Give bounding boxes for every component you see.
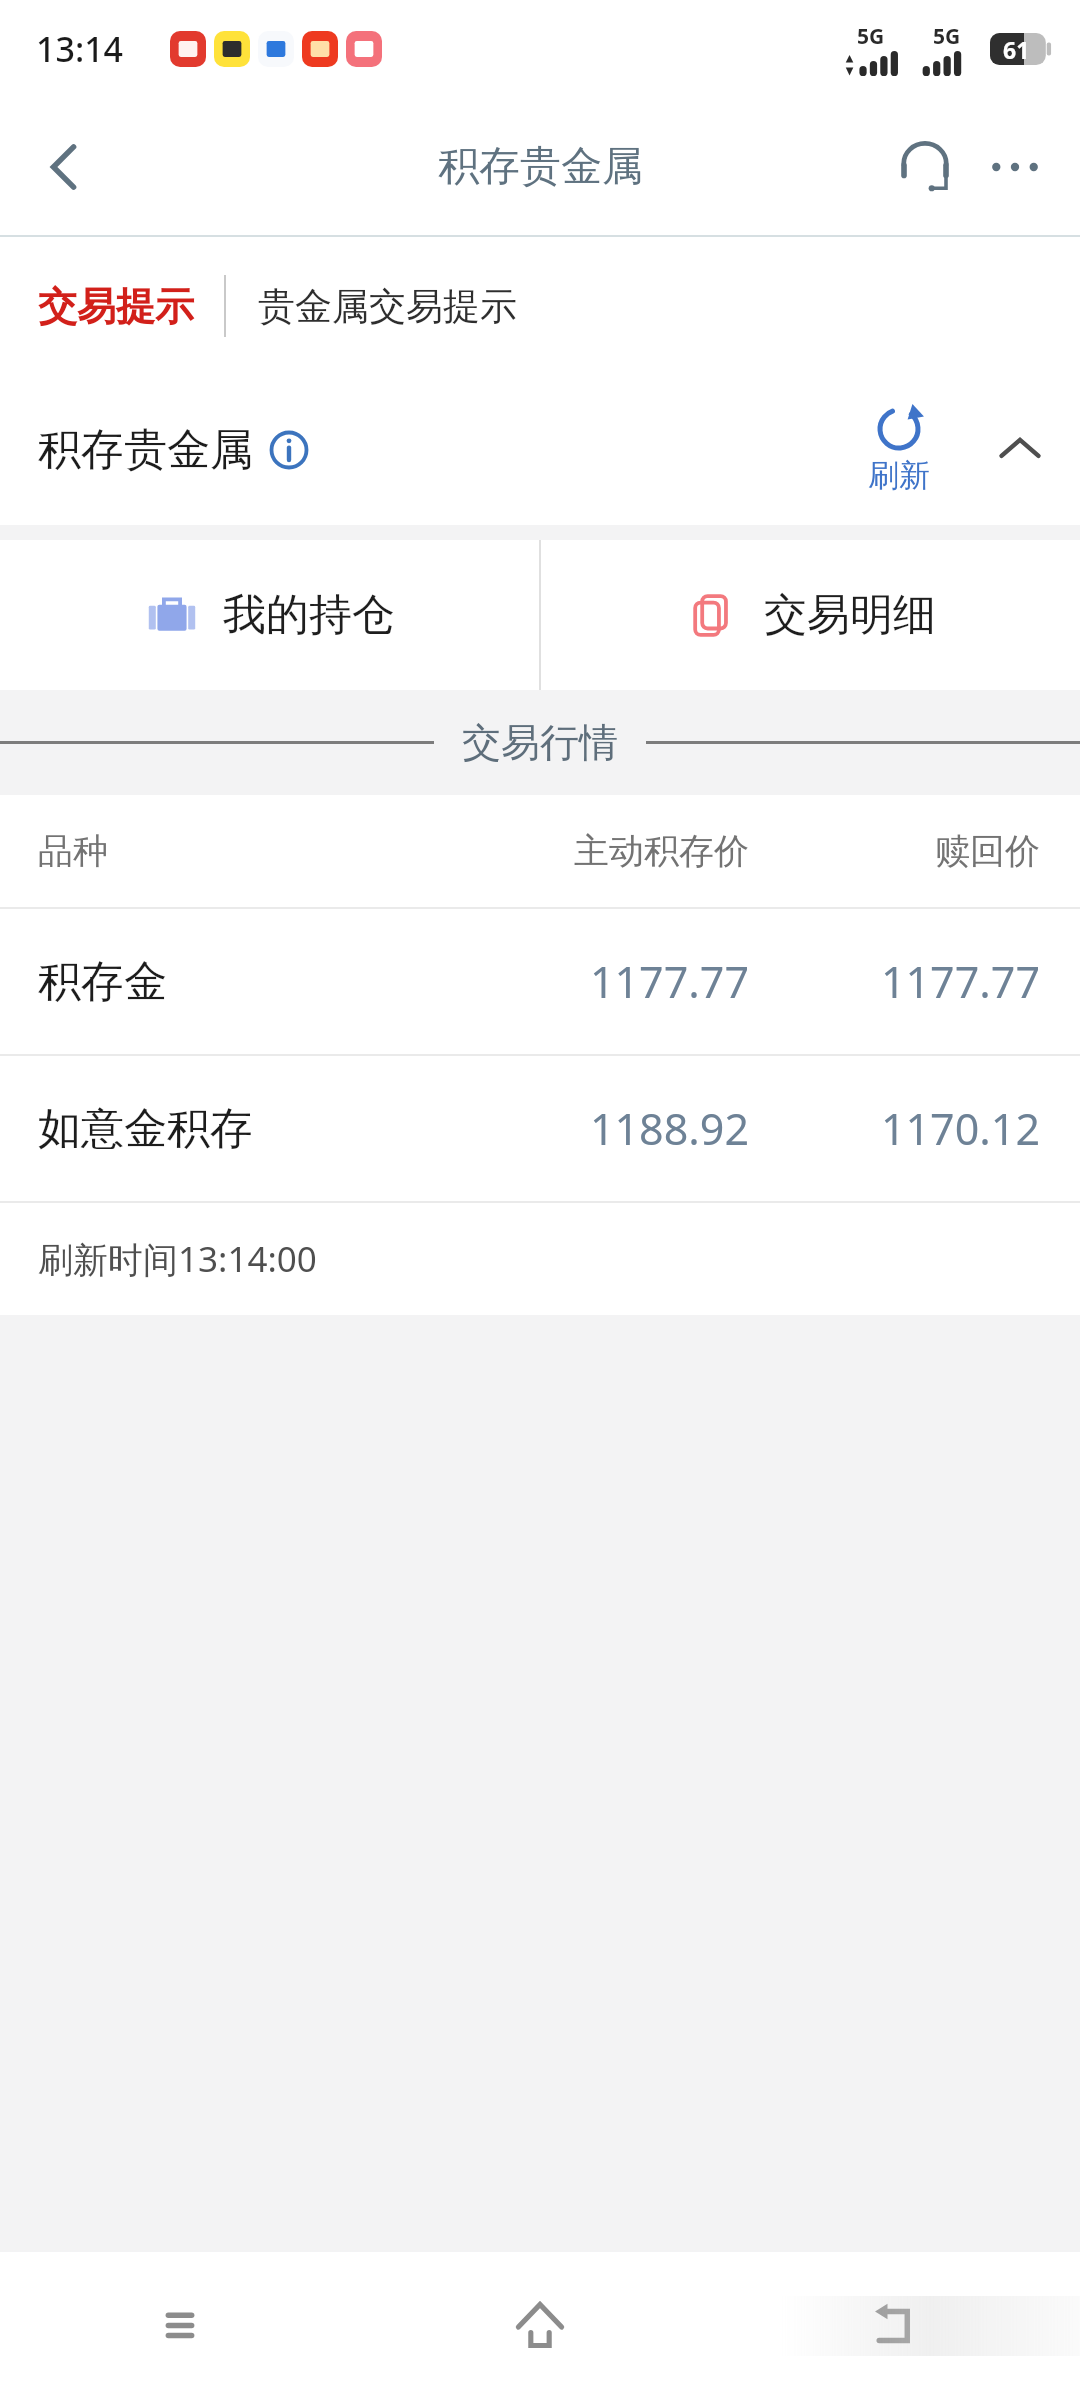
staticText: 交易提示: [38, 282, 194, 331]
button[interactable]: Home: [360, 2252, 720, 2400]
button[interactable]: Information: [265, 426, 313, 474]
staticText: 1177.77: [749, 952, 1040, 1011]
button[interactable]: More options: [970, 122, 1060, 212]
staticText: 1188.92: [394, 1099, 749, 1158]
button[interactable]: Refresh: [868, 405, 930, 495]
button[interactable]: 交易提示: [0, 237, 1080, 375]
button[interactable]: 如意金积存: [0, 1056, 1080, 1201]
staticText: 交易行情: [462, 718, 618, 767]
staticText: 主动积存价: [394, 829, 749, 873]
staticText: 交易明细: [764, 588, 936, 642]
staticText: 积存金: [38, 955, 394, 1009]
staticText: 如意金积存: [38, 1102, 394, 1156]
button[interactable]: 积存金: [0, 909, 1080, 1054]
staticText: 61: [1003, 34, 1030, 65]
staticText: 刷新: [868, 456, 930, 495]
staticText: 5G: [857, 22, 885, 51]
staticText: 贵金属交易提示: [258, 283, 517, 330]
staticText: 13:14: [36, 26, 124, 72]
button[interactable]: Collapse: [982, 412, 1058, 488]
button[interactable]: Back: [22, 125, 106, 209]
staticText: 我的持仓: [223, 588, 395, 642]
staticText: 1170.12: [749, 1099, 1040, 1158]
button[interactable]: 我的持仓: [0, 540, 539, 690]
staticText: 品种: [38, 829, 394, 873]
staticText: 积存贵金属: [38, 423, 253, 477]
staticText: 1177.77: [394, 952, 749, 1011]
button[interactable]: Recent apps: [0, 2252, 360, 2400]
button[interactable]: 交易明细: [541, 540, 1080, 690]
staticText: 刷新时间13:14:00: [38, 1235, 317, 1283]
staticText: 赎回价: [749, 829, 1040, 873]
staticText: 积存贵金属: [438, 141, 643, 193]
button[interactable]: Customer service: [880, 122, 970, 212]
button[interactable]: Back: [720, 2252, 1080, 2400]
staticText: 5G: [933, 22, 961, 51]
